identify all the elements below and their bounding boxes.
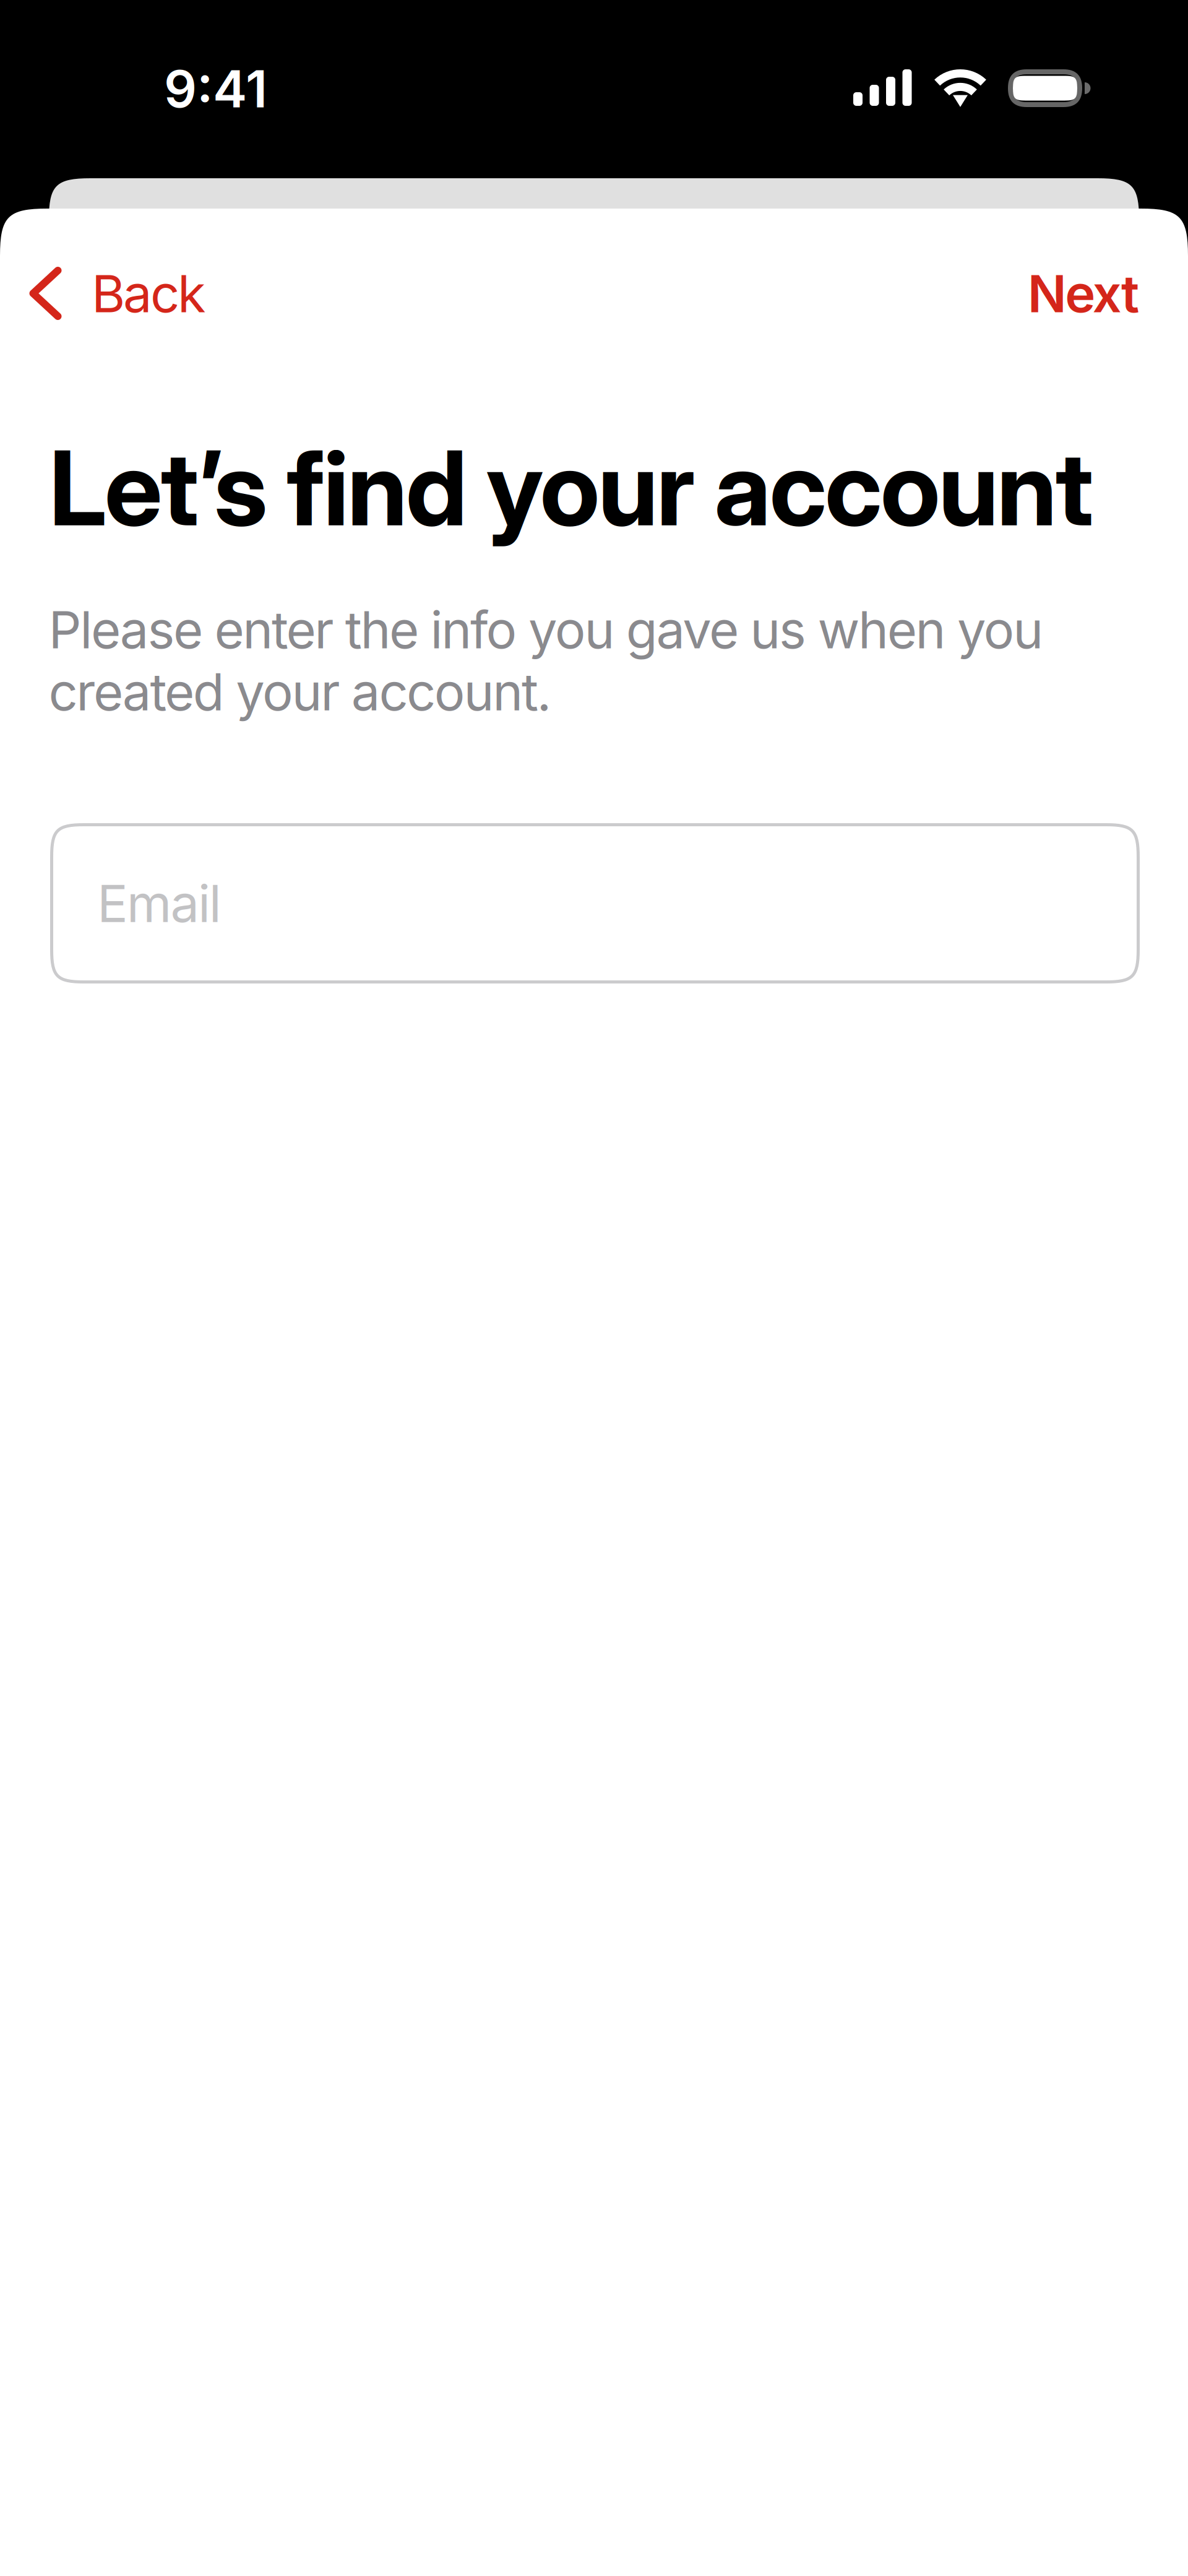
button[interactable]: Back [0, 248, 186, 340]
staticText: Email [97, 872, 221, 934]
button[interactable]: Next [1002, 248, 1188, 340]
staticText: Next [1028, 262, 1139, 325]
staticText: 9:41 [164, 58, 267, 120]
staticText: Back [92, 262, 206, 325]
staticText: Please enter the info you gave us when y… [49, 599, 1043, 723]
button[interactable]: Email [50, 823, 1140, 983]
staticText: Let’s find your account [49, 426, 1093, 550]
